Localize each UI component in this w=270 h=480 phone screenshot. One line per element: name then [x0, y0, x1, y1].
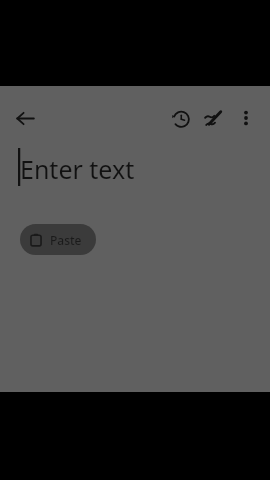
button[interactable]: Enter text — [0, 142, 270, 190]
staticText: Paste — [50, 232, 82, 248]
button[interactable]: Handwriting input — [197, 102, 229, 134]
staticText: Enter text — [20, 152, 135, 186]
button[interactable]: More options — [230, 102, 262, 134]
button[interactable]: History — [164, 102, 196, 134]
button[interactable]: Back — [9, 102, 41, 134]
button[interactable]: Paste — [20, 224, 96, 255]
